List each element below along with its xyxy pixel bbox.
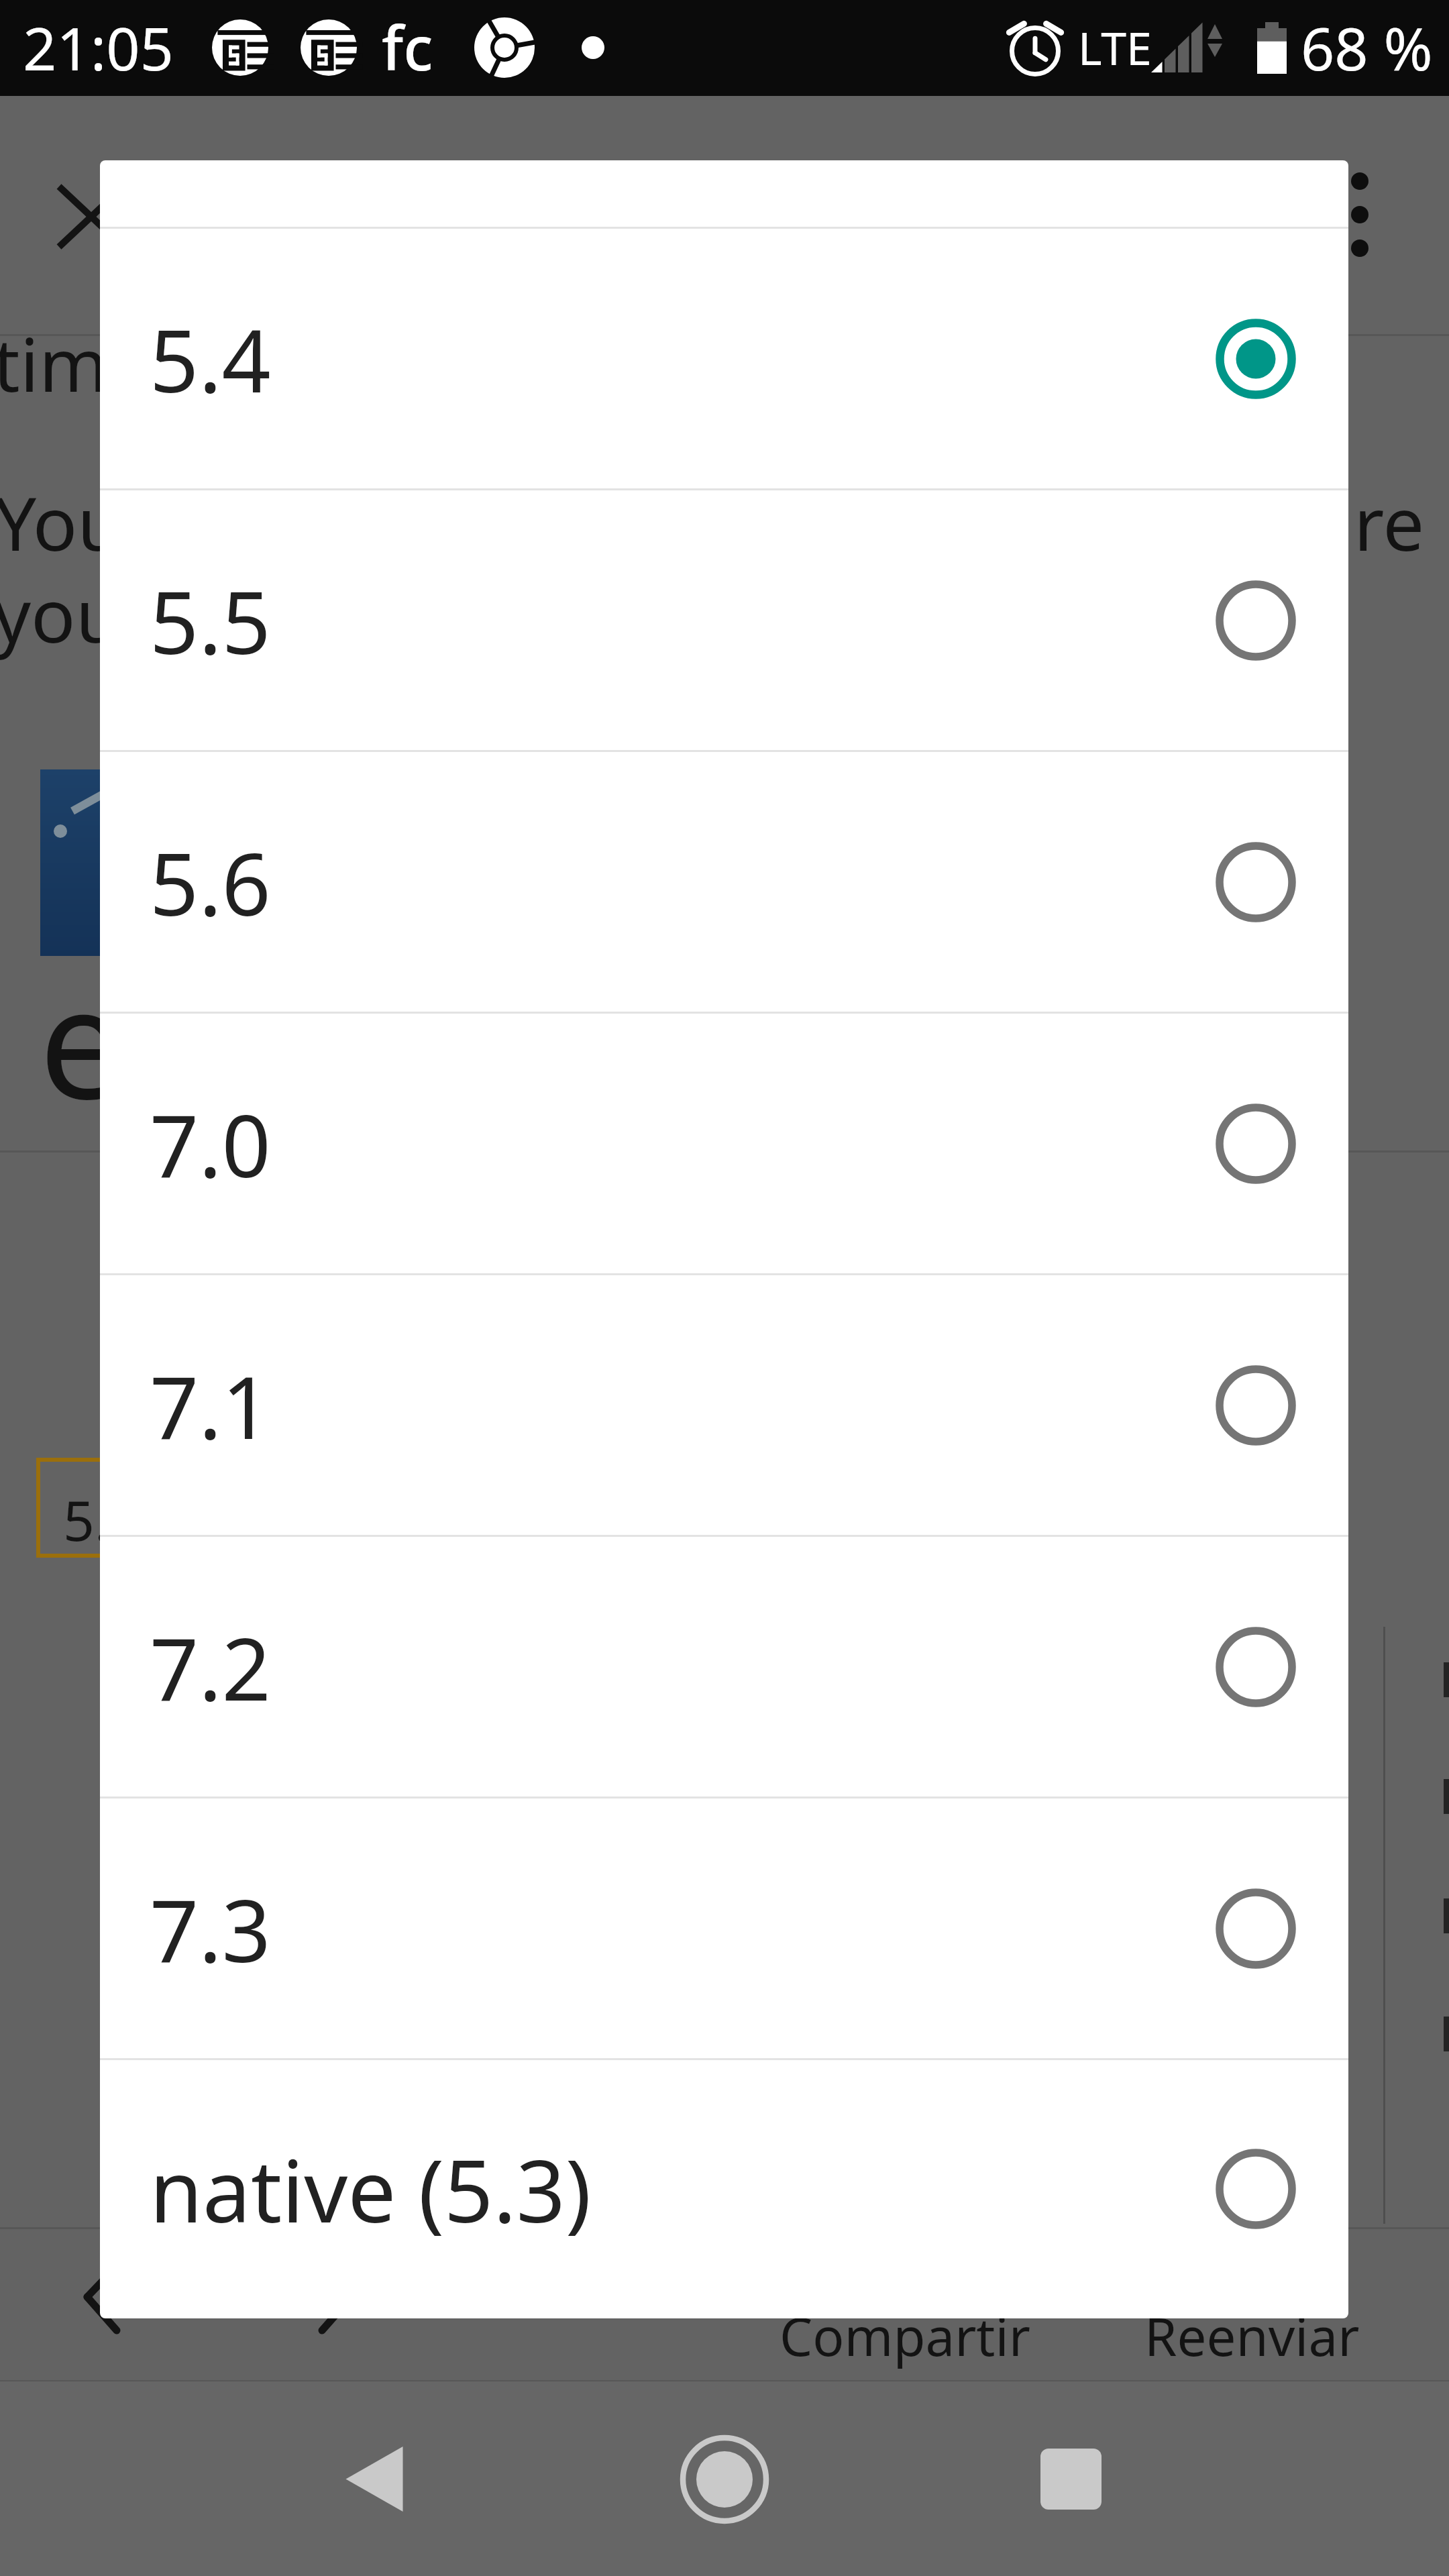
staticText: fc (382, 6, 433, 89)
button[interactable]: 5.5 (100, 490, 1348, 750)
staticText: 21:05 (23, 7, 174, 88)
staticText: tim (0, 313, 108, 413)
button[interactable]: 5.6 (100, 752, 1348, 1012)
staticText: you (0, 563, 121, 664)
staticText: 68 % (1301, 7, 1433, 88)
staticText: 5.5 (150, 562, 271, 679)
button[interactable]: 7.0 (100, 1014, 1348, 1273)
button[interactable]: Back (307, 2412, 441, 2546)
button[interactable]: Recent apps (1004, 2412, 1138, 2546)
staticText: LTE (1078, 16, 1152, 78)
staticText: Reenviar (1144, 2300, 1360, 2371)
staticText: re (1354, 472, 1425, 572)
button[interactable]: Home (657, 2412, 792, 2546)
staticText: You (0, 472, 123, 572)
staticText: 7.0 (150, 1085, 271, 1202)
staticText: 5.6 (150, 824, 271, 941)
staticText: Compartir (780, 2300, 1030, 2371)
button[interactable]: 7.3 (100, 1799, 1348, 2058)
staticText: 7.2 (150, 1609, 271, 1725)
button[interactable]: 7.1 (100, 1275, 1348, 1535)
button[interactable]: native (5.3) (100, 2060, 1348, 2318)
staticText: 7.3 (150, 1870, 271, 1987)
staticText: 5.4 (150, 301, 271, 417)
staticText: 5. (63, 1482, 109, 1557)
button[interactable]: 5.4 (100, 229, 1348, 488)
staticText: 7.1 (150, 1347, 271, 1464)
button[interactable]: 7.2 (100, 1537, 1348, 1796)
staticText: native (5.3) (150, 2131, 592, 2247)
staticText: e (39, 935, 125, 1144)
